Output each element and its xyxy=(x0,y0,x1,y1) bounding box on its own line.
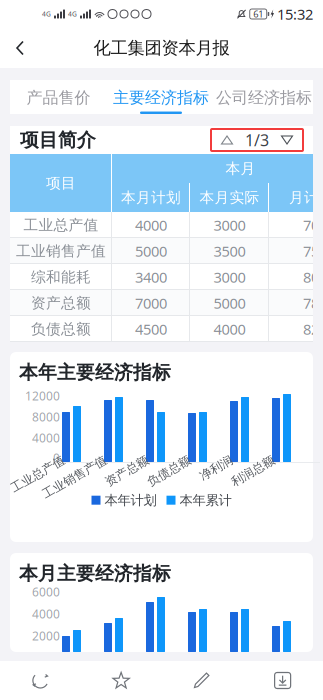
staticText: 7500 xyxy=(303,241,323,261)
staticText: 负债总额 xyxy=(31,320,91,338)
staticText: 0 xyxy=(53,450,60,466)
staticText: 项目 xyxy=(46,174,76,192)
staticText: 1/3 xyxy=(245,129,269,151)
staticText: 7000 xyxy=(303,215,323,235)
button[interactable]: 产品售价 xyxy=(26,80,90,114)
staticText: 本月实际 xyxy=(199,188,259,206)
staticText: 工业销售产值 xyxy=(38,468,110,482)
staticText: 利润总额 xyxy=(230,468,278,482)
staticText: 4000 xyxy=(32,430,60,446)
staticText: 净利润 xyxy=(200,468,236,482)
staticText: 8000 xyxy=(303,267,323,287)
staticText: 3000 xyxy=(213,215,245,235)
staticText: 月计划数 xyxy=(289,188,323,206)
staticText: 本年累计 xyxy=(179,492,231,508)
staticText: 4500 xyxy=(135,319,167,339)
staticText: 工业总产值 xyxy=(8,468,68,482)
button[interactable]: Favorite xyxy=(81,661,162,700)
staticText: 资产总额 xyxy=(104,468,152,482)
staticText: 化工集团资本月报 xyxy=(93,37,229,59)
staticText: 本月 xyxy=(225,159,255,177)
staticText: 8000 xyxy=(32,409,60,425)
staticText: 负债总额 xyxy=(146,468,194,482)
staticText: 项目简介 xyxy=(20,128,96,151)
staticText: 61 xyxy=(253,8,263,20)
staticText: 12000 xyxy=(25,388,60,404)
staticText: 2000 xyxy=(32,628,60,644)
staticText: 4G xyxy=(68,10,77,18)
staticText: 4000 xyxy=(135,215,167,235)
button[interactable]: Refresh xyxy=(0,661,81,700)
staticText: 产品售价 xyxy=(26,88,90,107)
staticText: 5000 xyxy=(213,293,245,313)
staticText: 4000 xyxy=(213,319,245,339)
staticText: 本年主要经济指标 xyxy=(19,361,171,384)
staticText: 7000 xyxy=(135,293,167,313)
staticText: 本年计划 xyxy=(104,492,156,508)
staticText: 7800 xyxy=(303,293,323,313)
button[interactable]: 公司经济指标 xyxy=(216,80,312,114)
button[interactable]: Next page xyxy=(271,129,303,151)
button[interactable]: Previous page xyxy=(211,129,243,151)
staticText: 主要经济指标 xyxy=(113,88,209,107)
staticText: 8200 xyxy=(303,319,323,339)
staticText: 工业总产值 xyxy=(23,216,98,234)
staticText: 工业销售产值 xyxy=(16,242,106,260)
staticText: 15:32 xyxy=(277,4,313,24)
button[interactable]: Edit xyxy=(161,661,242,700)
staticText: 资产总额 xyxy=(31,294,91,312)
staticText: 4G xyxy=(42,10,51,18)
staticText: 6000 xyxy=(32,584,60,600)
staticText: 本月主要经济指标 xyxy=(19,562,171,585)
staticText: 公司经济指标 xyxy=(216,88,312,107)
staticText: 3400 xyxy=(135,267,167,287)
staticText: 综和能耗 xyxy=(31,268,91,286)
staticText: 本月计划 xyxy=(121,188,181,206)
staticText: 4000 xyxy=(32,606,60,622)
button[interactable]: 主要经济指标 xyxy=(113,80,209,114)
staticText: 5000 xyxy=(135,241,167,261)
button[interactable]: Back xyxy=(0,28,40,68)
button[interactable]: Download xyxy=(242,661,323,700)
staticText: 3500 xyxy=(213,241,245,261)
staticText: 3000 xyxy=(213,267,245,287)
